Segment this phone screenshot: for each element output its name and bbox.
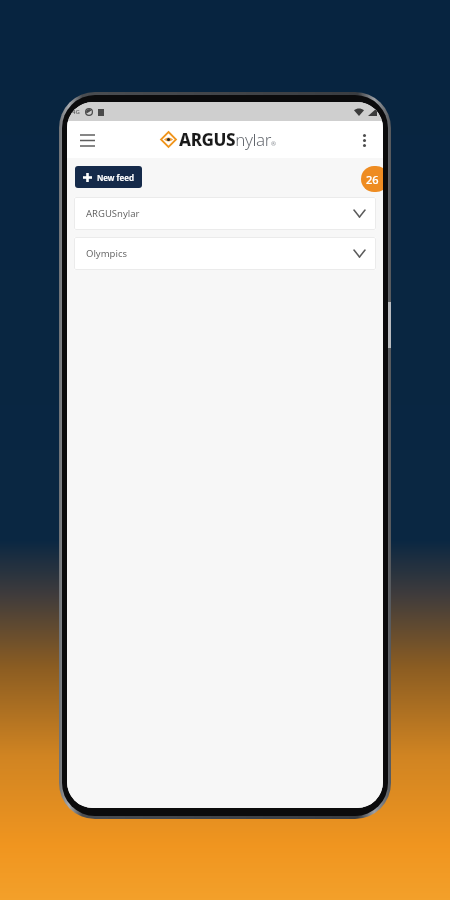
button[interactable]: Olympics [74, 237, 376, 270]
button[interactable]: 26 [361, 166, 383, 192]
staticText: ARGUSnylar® [179, 128, 277, 151]
button[interactable]: New feed [75, 166, 142, 188]
staticText: 4G [72, 108, 80, 116]
staticText: 26 [366, 172, 379, 187]
button[interactable]: More options [349, 125, 379, 155]
button[interactable]: ARGUSnylar [74, 197, 376, 230]
button[interactable]: Open navigation menu [71, 124, 103, 156]
staticText: Olympics [86, 247, 128, 260]
staticText: ARGUSnylar [86, 207, 140, 220]
staticText: New feed [97, 172, 134, 183]
